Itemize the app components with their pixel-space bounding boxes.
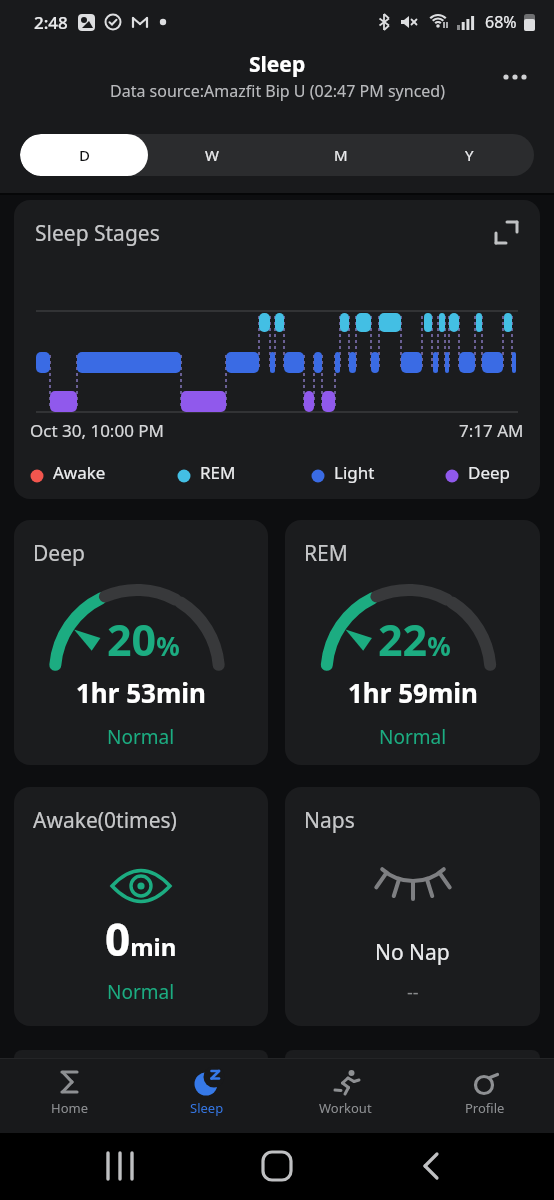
staticText: 0min [105,909,177,969]
button[interactable]: W [148,134,276,176]
staticText: Deep [468,461,511,484]
button[interactable]: Sleep [138,1058,276,1133]
staticText: Sleep [190,1099,224,1117]
button[interactable] [494,220,520,246]
button[interactable]: Workout [276,1058,415,1133]
staticText: Home [51,1099,88,1117]
staticText: Sleep Stages [35,219,160,248]
staticText: W [205,145,219,165]
button[interactable]: Awake(0times) [14,787,268,1026]
staticText: Naps [304,806,355,835]
staticText: Sleep [249,50,306,79]
button[interactable]: M [276,134,405,176]
staticText: Y [465,145,474,165]
staticText: 2:48 [34,11,68,34]
staticText: M [334,145,348,165]
button[interactable]: Naps [285,787,540,1026]
staticText: Oct 30, 10:00 PM [30,419,164,442]
button[interactable]: REM [285,520,540,765]
staticText: 1hr 53min [76,675,206,710]
staticText: Normal [379,724,447,750]
button[interactable]: D [20,134,148,176]
button[interactable]: Profile [415,1058,554,1133]
staticText: Profile [465,1099,505,1117]
staticText: Normal [107,979,175,1005]
staticText: Light [334,461,375,484]
staticText: 7:17 AM [459,419,524,442]
staticText: No Nap [375,938,450,967]
button[interactable]: Y [405,134,534,176]
staticText: Data source:Amazfit Bip U (02:47 PM sync… [110,80,445,102]
button[interactable]: Deep [14,520,268,765]
staticText: -- [407,980,419,1005]
staticText: 20% [107,610,180,669]
staticText: 22% [378,610,451,669]
staticText: Awake [53,461,106,484]
button[interactable]: Sleep Stages [14,200,540,499]
staticText: Workout [319,1099,372,1117]
staticText: REM [304,539,348,568]
staticText: D [79,145,90,165]
staticText: REM [200,461,236,484]
button[interactable]: Home [0,1058,138,1133]
staticText: 68% [485,11,517,33]
staticText: Awake(0times) [33,806,177,835]
button[interactable] [500,62,532,92]
staticText: 1hr 59min [348,675,478,710]
staticText: Deep [33,539,85,568]
staticText: Normal [107,724,175,750]
